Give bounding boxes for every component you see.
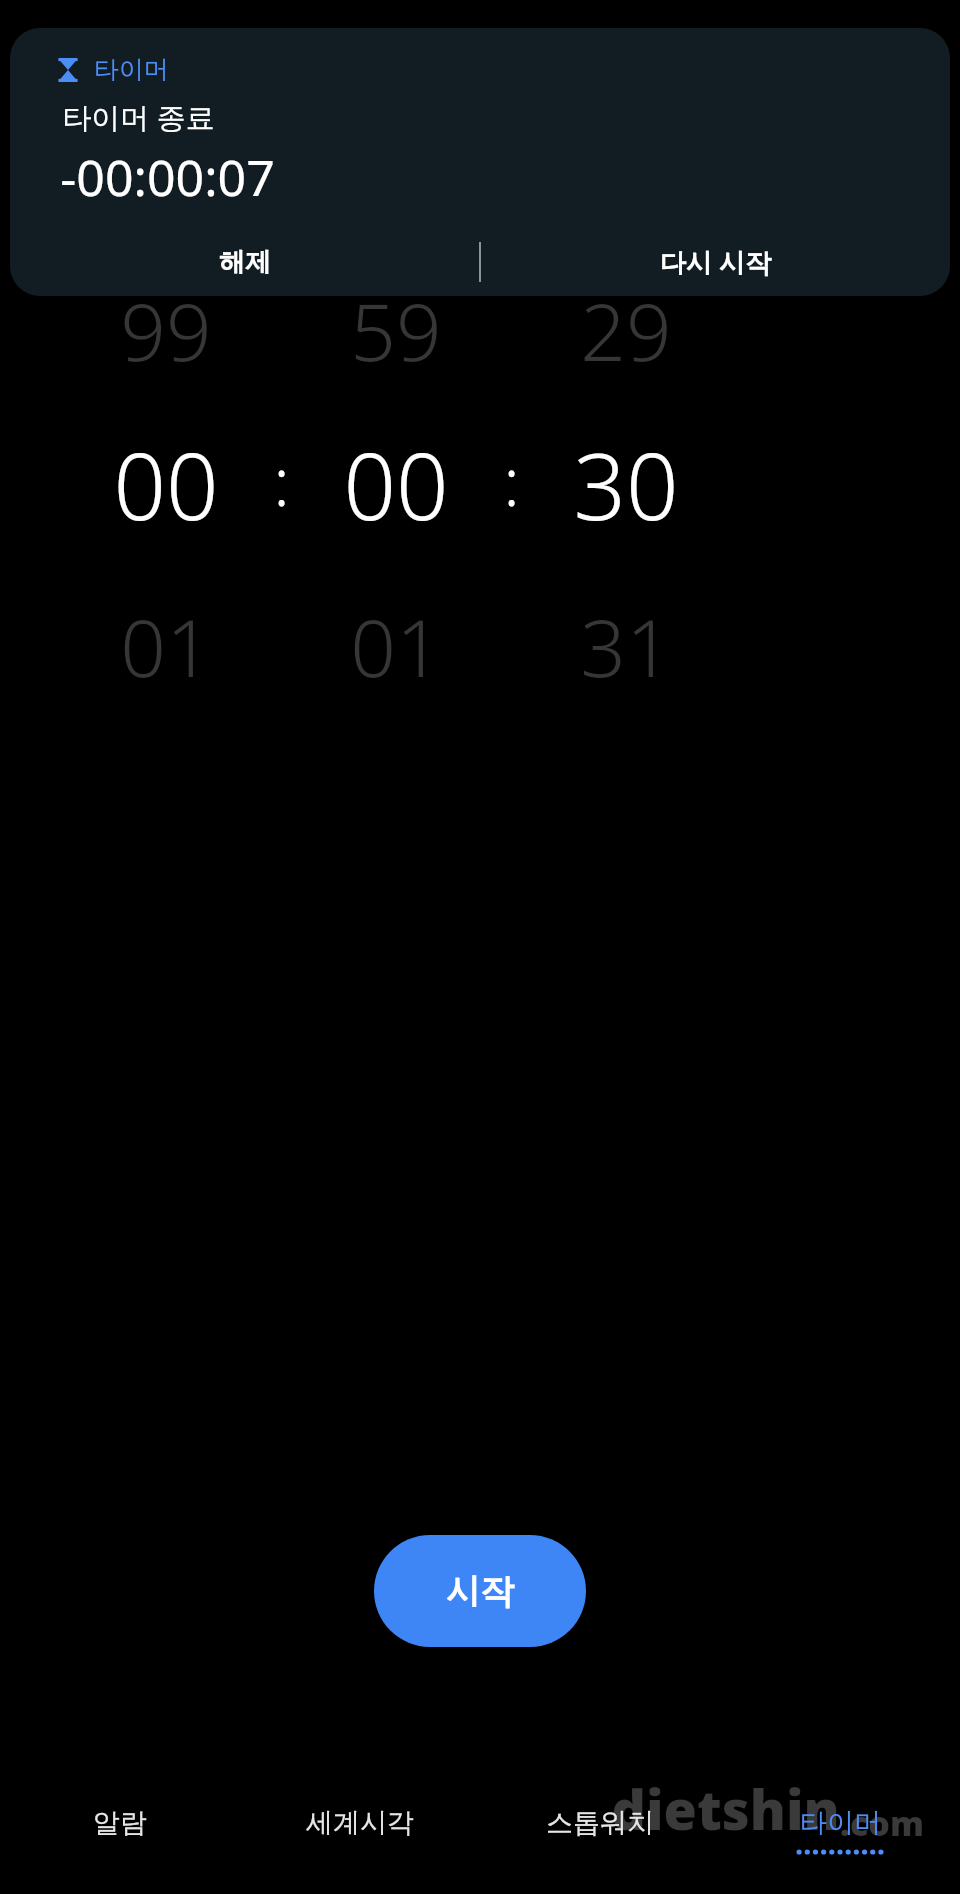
button[interactable]: 30	[546, 422, 706, 537]
staticText: 스톱워치	[546, 1806, 654, 1840]
button[interactable]: 타이머	[720, 1734, 960, 1894]
button[interactable]: 세계시각	[240, 1734, 480, 1894]
button[interactable]: 01	[86, 588, 246, 703]
staticText: 29	[580, 275, 672, 384]
staticText: 01	[350, 591, 442, 700]
button[interactable]: 다시 시작	[481, 229, 950, 295]
button[interactable]: 59	[316, 272, 476, 387]
button[interactable]: 00	[86, 422, 246, 537]
staticText: .com	[840, 1800, 924, 1846]
button[interactable]: 00	[316, 422, 476, 537]
button[interactable]: 스톱워치	[480, 1734, 720, 1894]
other: Timer	[56, 58, 80, 82]
staticText: 59	[350, 275, 442, 384]
staticText: 다시 시작	[660, 244, 771, 280]
staticText: 99	[120, 275, 212, 384]
staticText: :	[503, 435, 520, 525]
staticText: 31	[580, 591, 672, 700]
button[interactable]: 알람	[0, 1734, 240, 1894]
staticText: 세계시각	[306, 1806, 414, 1840]
button[interactable]: 99	[86, 272, 246, 387]
button[interactable]: 해제	[10, 229, 479, 295]
staticText: -00:00:07	[60, 143, 275, 211]
staticText: 타이머	[94, 54, 169, 85]
staticText: 30	[573, 422, 679, 537]
staticText: 00	[113, 422, 219, 537]
staticText: :	[273, 435, 290, 525]
staticText: 타이머 종료	[62, 97, 215, 137]
staticText: dietshin	[611, 1772, 840, 1846]
button[interactable]: 01	[316, 588, 476, 703]
staticText: 해제	[219, 246, 271, 279]
button[interactable]: 31	[546, 588, 706, 703]
staticText: 01	[120, 591, 212, 700]
button[interactable]: Timer	[10, 28, 950, 296]
button[interactable]: 29	[546, 272, 706, 387]
staticText: 타이머	[800, 1806, 881, 1840]
button[interactable]: 시작	[374, 1535, 586, 1647]
staticText: 00	[343, 422, 449, 537]
staticText: 시작	[446, 1570, 514, 1613]
staticText: 알람	[93, 1806, 147, 1840]
